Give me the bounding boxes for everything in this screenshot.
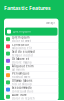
button[interactable]: Ut labore et bbox=[4, 57, 58, 64]
staticText: Lorem ipsum bbox=[13, 30, 30, 33]
button[interactable]: Aute irure bbox=[4, 93, 58, 100]
staticText: Aute irure bbox=[12, 93, 27, 97]
button[interactable]: Consectetur bbox=[4, 43, 58, 50]
button[interactable]: Veniam quis bbox=[4, 72, 58, 79]
staticText: ad minim bbox=[12, 68, 24, 71]
button[interactable]: Sed do eiusmod bbox=[4, 50, 58, 57]
button[interactable]: Manage bbox=[45, 21, 55, 25]
staticText: Lorem ipsum bbox=[12, 36, 29, 39]
button[interactable]: Lorem ipsum bbox=[5, 28, 57, 36]
button[interactable]: Ullamco laboris bbox=[4, 79, 58, 86]
staticText: tempor incidid bbox=[12, 54, 33, 57]
button[interactable]: Ex ea commodo bbox=[4, 86, 58, 93]
staticText: nostrud exerc bbox=[12, 75, 30, 79]
staticText: dolor in repreh bbox=[12, 97, 35, 100]
staticText: nisi ut aliquip bbox=[12, 82, 32, 86]
button[interactable]: Aliqua ut enim bbox=[4, 64, 58, 72]
staticText: dolore magna bbox=[12, 61, 31, 64]
staticText: Ex ea commodo bbox=[12, 86, 32, 89]
staticText: Manage bbox=[45, 21, 55, 25]
staticText: consequat duis bbox=[12, 90, 33, 93]
staticText: Veniam quis bbox=[12, 72, 29, 75]
staticText: adipiscing elit bbox=[12, 46, 32, 50]
staticText: dolor sit amet bbox=[12, 39, 31, 43]
staticText: Consectetur bbox=[12, 43, 29, 46]
staticText: Aliqua ut enim bbox=[12, 64, 33, 68]
button[interactable]: Lorem ipsum bbox=[4, 36, 58, 43]
staticText: Sed do eiusmod bbox=[12, 50, 35, 53]
staticText: Ullamco laboris bbox=[12, 79, 32, 82]
staticText: Fantastic Features bbox=[4, 4, 51, 12]
staticText: Ut labore et bbox=[12, 57, 29, 61]
